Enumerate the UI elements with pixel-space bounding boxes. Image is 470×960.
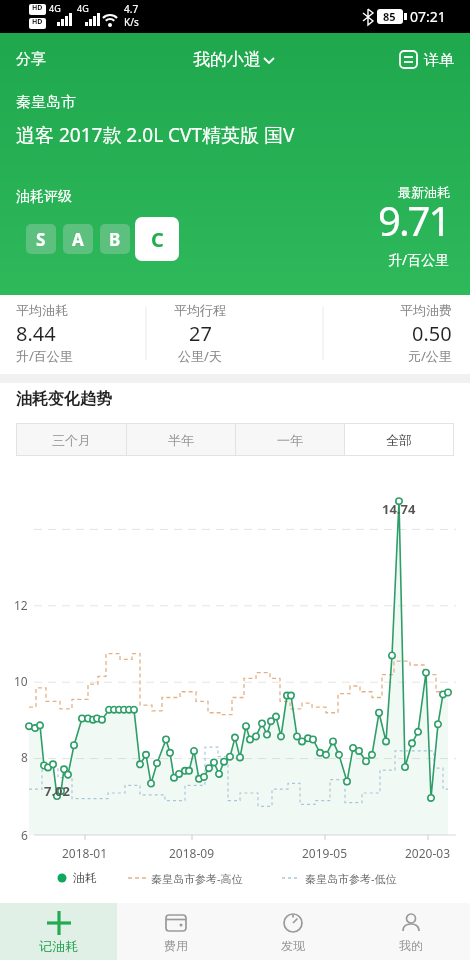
staticText: 详单 — [424, 51, 454, 70]
staticText: 分享 — [16, 50, 46, 69]
staticText: 逍客 2017款 2.0L CVT精英版 国V — [16, 122, 295, 148]
button[interactable]: 记油耗 — [0, 903, 117, 960]
staticText: 10 — [14, 673, 28, 689]
staticText: 升/百公里 — [16, 347, 73, 365]
staticText: 升/百公里 — [388, 250, 450, 269]
staticText: HD — [32, 17, 43, 27]
staticText: 4.7 — [124, 2, 139, 16]
staticText: A — [72, 228, 84, 251]
staticText: 14.74 — [382, 500, 416, 518]
button[interactable]: 全部 — [345, 424, 453, 455]
staticText: 2019-05 — [302, 845, 348, 861]
staticText: 最新油耗 — [398, 184, 450, 200]
staticText: 秦皇岛市参考-高位 — [151, 871, 243, 886]
staticText: S — [36, 228, 46, 251]
staticText: 2018-01 — [62, 845, 108, 861]
button[interactable]: 详单 — [396, 47, 456, 73]
staticText: 0.50 — [412, 320, 452, 347]
staticText: 记油耗 — [39, 938, 78, 954]
staticText: 平均油费 — [400, 302, 452, 318]
staticText: 发现 — [281, 938, 305, 953]
button[interactable]: 发现 — [234, 903, 352, 960]
staticText: 12 — [14, 597, 28, 613]
staticText: 8.44 — [16, 320, 56, 347]
button[interactable]: 费用 — [117, 903, 234, 960]
staticText: 27 — [189, 320, 212, 347]
staticText: 我的 — [399, 938, 423, 953]
staticText: 85 — [383, 9, 396, 24]
staticText: 公里/天 — [178, 347, 222, 365]
staticText: 8 — [21, 749, 28, 765]
staticText: 费用 — [164, 938, 188, 953]
button[interactable]: 我的 — [352, 903, 470, 960]
staticText: K/s — [124, 15, 139, 29]
staticText: B — [109, 228, 121, 251]
button[interactable]: A — [63, 224, 93, 254]
staticText: 4G — [77, 2, 89, 14]
button[interactable]: 三个月 — [17, 424, 126, 455]
button[interactable]: S — [26, 224, 56, 254]
staticText: 秦皇岛市参考-低位 — [305, 871, 397, 886]
staticText: 平均油耗 — [16, 302, 68, 318]
staticText: 9.71 — [378, 193, 450, 247]
staticText: 一年 — [277, 432, 303, 448]
staticText: 我的小逍 — [193, 49, 261, 70]
button[interactable]: 半年 — [127, 424, 235, 455]
button[interactable]: B — [100, 224, 130, 254]
staticText: 7.02 — [44, 782, 70, 800]
staticText: 半年 — [168, 432, 194, 448]
staticText: 秦皇岛市 — [16, 93, 76, 112]
button[interactable]: 分享 — [10, 44, 52, 75]
button[interactable]: C — [135, 217, 179, 261]
staticText: 元/公里 — [408, 347, 452, 365]
staticText: 全部 — [386, 432, 412, 448]
staticText: 6 — [21, 827, 28, 843]
staticText: 油耗变化趋势 — [16, 389, 112, 409]
staticText: C — [151, 226, 164, 253]
staticText: HD — [32, 3, 43, 13]
staticText: 三个月 — [52, 432, 91, 448]
button[interactable]: 一年 — [236, 424, 344, 455]
staticText: 2018-09 — [169, 845, 215, 861]
staticText: 油耗 — [73, 870, 97, 885]
button[interactable]: 我的小逍 — [187, 43, 283, 76]
staticText: 2020-03 — [405, 845, 451, 861]
staticText: 07:21 — [410, 7, 446, 26]
staticText: 油耗评级 — [16, 188, 72, 206]
staticText: 平均行程 — [174, 302, 226, 318]
staticText: 4G — [49, 2, 61, 14]
